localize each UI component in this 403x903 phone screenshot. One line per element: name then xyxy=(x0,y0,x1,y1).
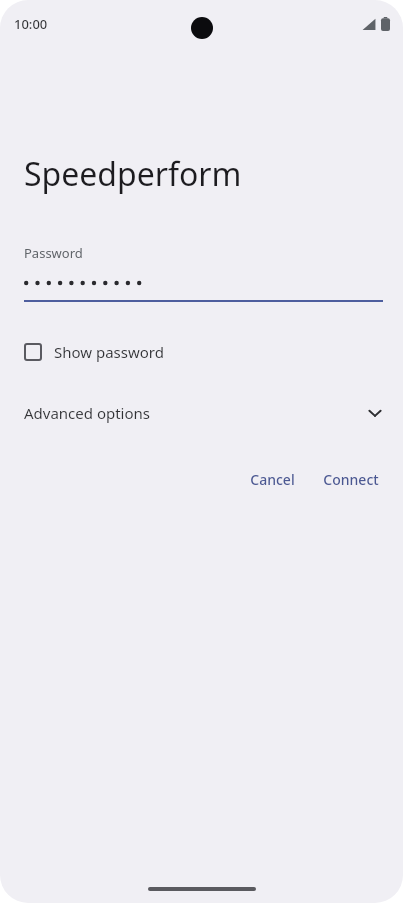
other: Expand advanced options xyxy=(367,405,383,421)
staticText: 10:00 xyxy=(14,15,48,33)
staticText: Show password xyxy=(54,342,164,362)
staticText: Speedperform xyxy=(24,152,242,196)
button[interactable]: Cancel xyxy=(242,464,303,495)
staticText: Advanced options xyxy=(24,403,151,423)
button[interactable]: Show password xyxy=(0,338,403,366)
staticText: Cancel xyxy=(250,470,295,489)
button[interactable]: Advanced options xyxy=(0,397,403,429)
button[interactable]: Connect xyxy=(315,464,387,495)
staticText: Password xyxy=(24,244,83,262)
staticText: Connect xyxy=(323,470,379,489)
